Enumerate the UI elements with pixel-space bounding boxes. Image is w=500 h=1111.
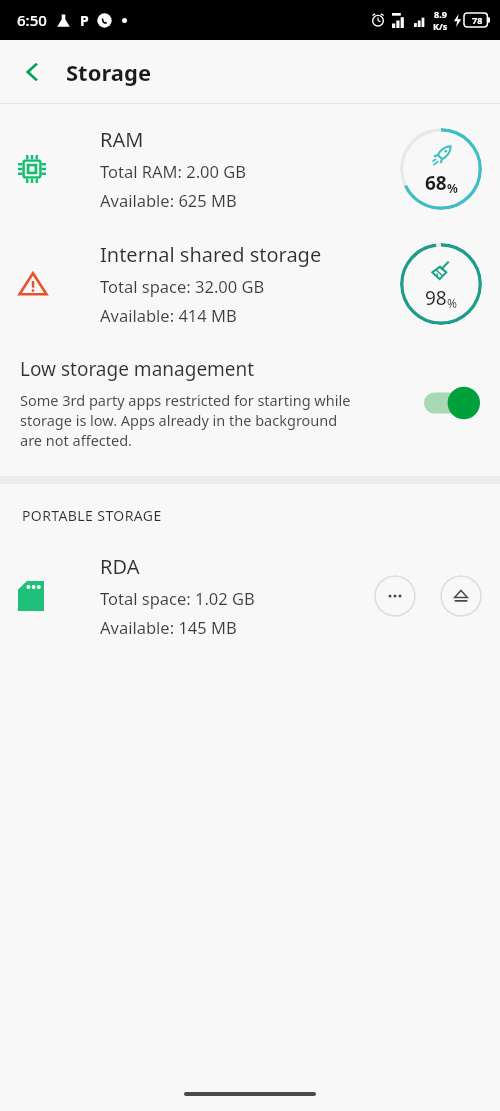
staticText: 8.9 xyxy=(434,8,447,20)
staticText: RAM xyxy=(100,126,144,153)
button[interactable]: RDA xyxy=(0,553,500,638)
staticText: Available: 145 MB xyxy=(100,616,237,638)
staticText: storage is low. Apps already in the back… xyxy=(20,410,338,430)
button[interactable]: RAM xyxy=(0,118,500,219)
staticText: % xyxy=(447,295,457,311)
staticText: Storage xyxy=(66,57,152,87)
button[interactable]: Low storage management xyxy=(0,352,500,454)
button[interactable]: Clean storage xyxy=(400,243,482,325)
staticText: 98 xyxy=(425,285,447,311)
staticText: Some 3rd party apps restricted for start… xyxy=(20,390,351,410)
staticText: are not affected. xyxy=(20,430,132,450)
button[interactable]: Eject xyxy=(440,575,482,617)
staticText: % xyxy=(447,180,458,196)
button[interactable]: Back xyxy=(10,49,56,95)
staticText: Total space: 32.00 GB xyxy=(100,275,265,297)
staticText: RDA xyxy=(100,553,140,580)
staticText: Internal shared storage xyxy=(100,241,322,268)
staticText: Total space: 1.02 GB xyxy=(100,587,255,609)
staticText: Available: 414 MB xyxy=(100,304,237,326)
staticText: Total RAM: 2.00 GB xyxy=(100,160,247,182)
staticText: Available: 625 MB xyxy=(100,189,237,211)
button[interactable]: Boost memory xyxy=(400,128,482,210)
staticText: 6:50 xyxy=(17,10,47,30)
staticText: 68 xyxy=(425,170,447,196)
button[interactable]: Internal shared storage xyxy=(0,233,500,334)
staticText: PORTABLE STORAGE xyxy=(22,506,162,525)
staticText: K/s xyxy=(433,20,448,32)
staticText: 78 xyxy=(472,14,483,26)
staticText: P xyxy=(80,11,89,30)
staticText: Low storage management xyxy=(20,356,255,382)
button[interactable]: Low storage management toggle xyxy=(424,385,482,421)
button[interactable]: More options xyxy=(374,575,416,617)
